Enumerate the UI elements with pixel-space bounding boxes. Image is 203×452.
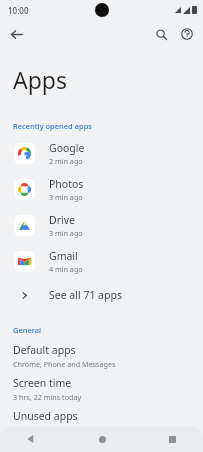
staticText: Google bbox=[49, 141, 85, 155]
button[interactable]: Default apps bbox=[0, 339, 203, 372]
button[interactable]: Recents bbox=[163, 430, 181, 448]
staticText: Screen time bbox=[13, 376, 72, 390]
staticText: Special app access bbox=[13, 438, 104, 452]
staticText: Unused apps bbox=[13, 409, 78, 423]
button[interactable]: Search bbox=[151, 24, 171, 44]
staticText: 4 min ago bbox=[49, 264, 83, 274]
staticText: Default apps bbox=[13, 343, 76, 357]
staticText: Photos bbox=[49, 177, 84, 191]
button[interactable]: See all 71 apps bbox=[0, 279, 203, 311]
button[interactable]: Unused apps bbox=[0, 405, 203, 438]
staticText: 10:00 bbox=[8, 5, 29, 16]
button[interactable]: Photos bbox=[0, 171, 203, 207]
button[interactable]: Google bbox=[0, 135, 203, 171]
staticText: Chrome, Phone and Messages bbox=[13, 359, 116, 369]
button[interactable]: Drive bbox=[0, 207, 203, 243]
button[interactable]: Gmail bbox=[0, 243, 203, 279]
staticText: 3 min ago bbox=[49, 228, 83, 238]
staticText: 2 min ago bbox=[49, 156, 83, 166]
button[interactable]: Special app access bbox=[0, 438, 203, 452]
button[interactable]: Screen time bbox=[0, 372, 203, 405]
staticText: 3 min ago bbox=[49, 192, 83, 202]
staticText: Recently opened apps bbox=[13, 121, 92, 131]
button[interactable]: Back bbox=[6, 24, 26, 44]
staticText: Drive bbox=[49, 213, 75, 227]
staticText: See all 71 apps bbox=[49, 288, 122, 302]
staticText: 3 hrs, 22 mins today bbox=[13, 392, 82, 402]
staticText: Apps bbox=[13, 64, 68, 95]
staticText: General bbox=[13, 325, 42, 335]
staticText: Gmail bbox=[49, 249, 78, 263]
button[interactable]: Help bbox=[177, 24, 197, 44]
button[interactable]: Home bbox=[93, 430, 111, 448]
button[interactable]: Back bbox=[22, 430, 40, 448]
